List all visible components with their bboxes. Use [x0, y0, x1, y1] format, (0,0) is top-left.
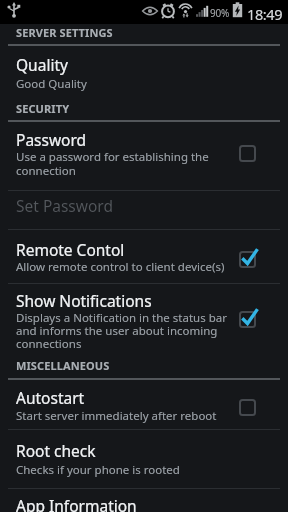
button[interactable]: Root check: [0, 430, 288, 488]
button[interactable]: App Information: [0, 489, 288, 512]
staticText: Start server immediately after reboot: [16, 408, 217, 424]
staticText: Displays a Notification in the status ba…: [16, 310, 227, 351]
button[interactable]: Remote Contol: [0, 230, 288, 283]
button[interactable]: Autostart: [0, 380, 288, 429]
staticText: MISCELLANEOUS: [16, 358, 110, 373]
staticText: Allow remote control to client device(s): [16, 259, 225, 275]
staticText: Remote Contol: [16, 239, 125, 260]
staticText: SERVER SETTINGS: [16, 25, 113, 40]
staticText: Quality: [16, 54, 68, 75]
button[interactable]: Show Notifications: [0, 284, 288, 354]
staticText: Autostart: [16, 387, 85, 408]
button[interactable]: Set Password: [0, 191, 288, 229]
staticText: Root check: [16, 440, 96, 461]
staticText: Password: [16, 129, 87, 150]
staticText: Show Notifications: [16, 290, 152, 311]
staticText: App Information: [16, 495, 137, 512]
staticText: Good Quality: [16, 76, 87, 92]
button[interactable]: Quality: [0, 48, 288, 120]
staticText: Use a password for establishing the conn…: [16, 149, 209, 178]
button[interactable]: Password: [0, 122, 288, 190]
staticText: 90%: [210, 6, 230, 20]
staticText: SECURITY: [16, 101, 70, 116]
staticText: Set Password: [16, 195, 113, 216]
staticText: Checks if your phone is rooted: [16, 462, 180, 478]
staticText: 18:49: [247, 4, 283, 24]
